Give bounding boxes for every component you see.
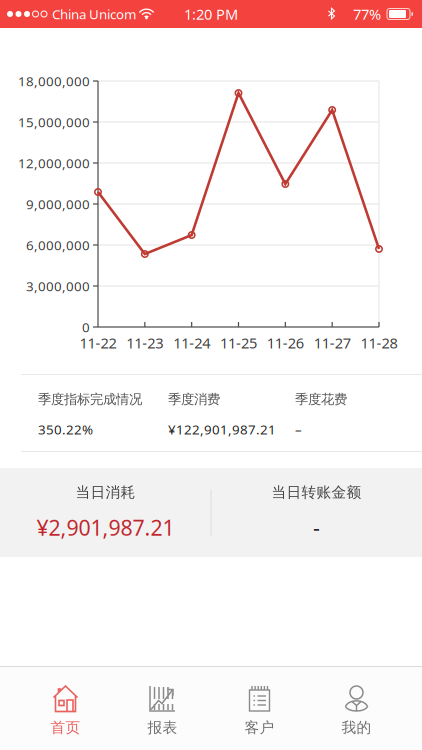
staticText: 季度指标完成情况 — [38, 391, 142, 407]
staticText: 11-23 — [126, 333, 163, 352]
staticText: 1:20 PM — [184, 4, 238, 24]
staticText: 11-26 — [267, 333, 304, 352]
staticText: 18,000,000 — [18, 72, 90, 90]
button[interactable]: 我的 — [308, 667, 405, 750]
staticText: 11-28 — [360, 333, 397, 352]
button[interactable]: 首页 — [17, 667, 114, 750]
staticText: 我的 — [341, 718, 371, 736]
staticText: – — [295, 420, 302, 438]
staticText: 当日消耗 — [75, 483, 135, 501]
staticText: 3,000,000 — [26, 277, 90, 295]
staticText: - — [313, 513, 320, 542]
staticText: 当日转账金额 — [271, 483, 361, 501]
staticText: 季度花费 — [295, 391, 347, 407]
staticText: 季度消费 — [168, 391, 220, 407]
staticText: 9,000,000 — [26, 195, 90, 213]
button[interactable]: 客户 — [211, 667, 308, 750]
staticText: 12,000,000 — [18, 154, 90, 172]
staticText: 客户 — [244, 718, 274, 736]
staticText: 0 — [82, 318, 90, 336]
staticText: 15,000,000 — [18, 113, 90, 131]
staticText: 11-25 — [220, 333, 257, 352]
staticText: China Unicom — [52, 5, 136, 23]
staticText: 350.22% — [38, 420, 93, 438]
staticText: 11-24 — [173, 333, 210, 352]
staticText: 77% — [353, 4, 381, 24]
staticText: ¥122,901,987.21 — [168, 420, 276, 438]
staticText: 首页 — [50, 718, 80, 736]
staticText: 报表 — [147, 718, 177, 736]
staticText: 11-27 — [314, 333, 351, 352]
staticText: 6,000,000 — [26, 236, 90, 254]
staticText: ¥2,901,987.21 — [36, 513, 174, 542]
staticText: 11-22 — [79, 333, 116, 352]
button[interactable]: 报表 — [114, 667, 211, 750]
